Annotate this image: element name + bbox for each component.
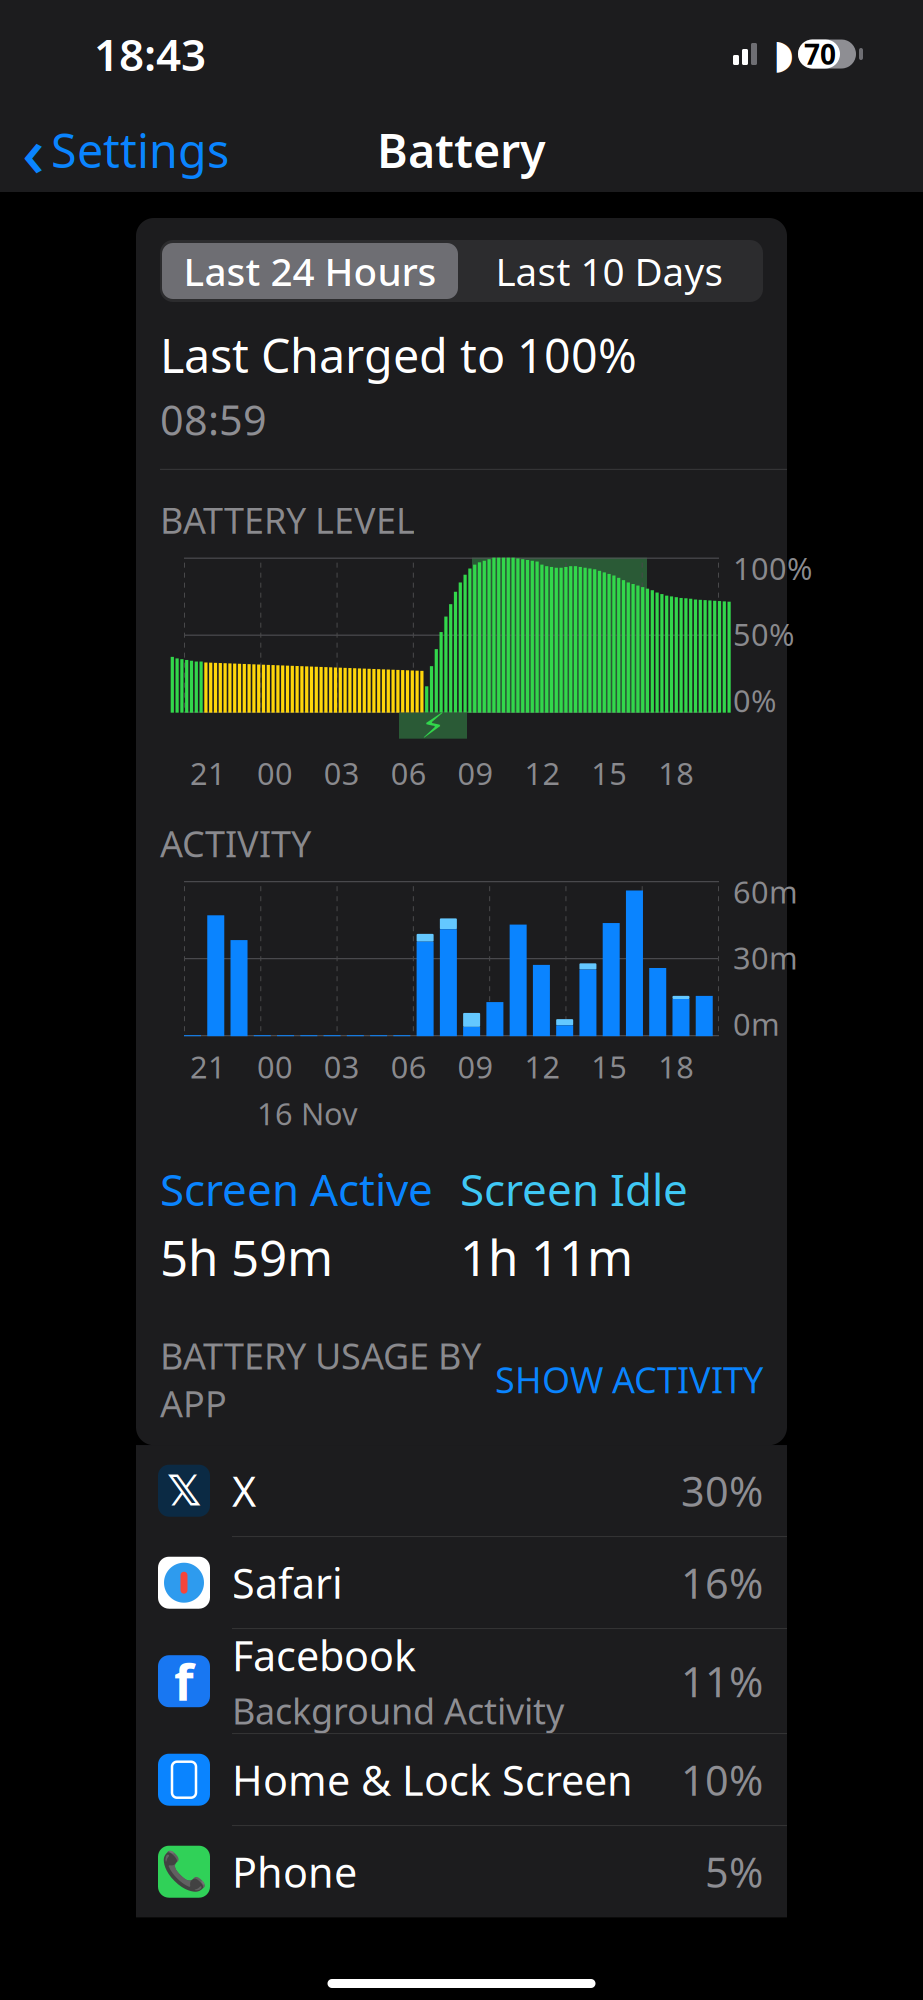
staticText: 18:43	[94, 25, 206, 83]
staticText: 06	[391, 753, 427, 793]
button[interactable]: 𝕏	[136, 1445, 787, 1537]
staticText: ‹	[22, 104, 45, 196]
staticText: 12	[524, 1046, 560, 1087]
staticText: ◗	[773, 31, 794, 77]
staticText: 18	[658, 1046, 694, 1087]
staticText: Facebook	[232, 1628, 416, 1683]
staticText: 50%	[733, 614, 794, 654]
staticText: 09	[457, 753, 493, 793]
button[interactable]: Last 10 Days	[458, 243, 761, 299]
staticText: 15	[591, 1046, 627, 1087]
staticText: ⚡︎	[421, 706, 445, 745]
staticText: Last 10 Days	[495, 245, 723, 297]
staticText: 30m	[733, 937, 798, 978]
staticText: Phone	[232, 1844, 357, 1899]
staticText: 03	[324, 1046, 360, 1087]
button[interactable]: SHOW ACTIVITY	[495, 1355, 763, 1403]
staticText: 5h 59m	[160, 1224, 333, 1290]
staticText: 16%	[681, 1555, 763, 1610]
staticText: SHOW ACTIVITY	[495, 1355, 763, 1403]
staticText: BATTERY LEVEL	[160, 496, 415, 544]
staticText: 21	[190, 1046, 226, 1087]
staticText: 15	[591, 753, 627, 793]
staticText: 📞	[161, 1850, 207, 1893]
staticText: 21	[190, 753, 226, 793]
staticText: Settings	[51, 119, 229, 181]
staticText: 11%	[681, 1654, 763, 1709]
button[interactable]: ‹	[0, 94, 229, 206]
button[interactable]: Home & Lock Screen	[136, 1734, 787, 1826]
staticText: Screen Active	[160, 1160, 433, 1218]
staticText: Safari	[232, 1555, 343, 1610]
staticText: 1h 11m	[460, 1224, 633, 1290]
staticText: 10%	[681, 1752, 763, 1807]
staticText: 03	[324, 753, 360, 793]
button[interactable]: Last 24 Hours	[162, 243, 458, 299]
staticText: 60m	[733, 871, 798, 912]
staticText: 5%	[705, 1844, 763, 1899]
button[interactable]: Safari	[136, 1537, 787, 1629]
staticText: 𝕏	[167, 1466, 201, 1515]
staticText: Screen Idle	[460, 1160, 688, 1218]
staticText: Battery	[377, 119, 546, 181]
staticText: 08:59	[160, 392, 267, 447]
staticText: 18	[658, 753, 694, 793]
staticText: 00	[257, 753, 293, 793]
button[interactable]: 📞	[136, 1826, 787, 1917]
staticText: X	[232, 1463, 256, 1518]
staticText: 100%	[733, 548, 812, 588]
staticText: 0%	[733, 680, 776, 721]
staticText: 30%	[681, 1463, 763, 1518]
staticText: ACTIVITY	[160, 819, 311, 867]
button[interactable]: f	[136, 1629, 787, 1734]
staticText: 0m	[733, 1003, 780, 1044]
staticText: f	[174, 1648, 194, 1715]
staticText: BATTERY USAGE BY APP	[160, 1332, 481, 1427]
staticText: 09	[457, 1046, 493, 1087]
staticText: 16 Nov	[257, 1093, 358, 1134]
staticText: 06	[391, 1046, 427, 1087]
staticText: 12	[524, 753, 560, 793]
staticText: Last 24 Hours	[183, 245, 436, 297]
staticText: 00	[257, 1046, 293, 1087]
staticText: 70	[804, 35, 836, 73]
staticText: Background Activity	[232, 1687, 564, 1734]
staticText: Home & Lock Screen	[232, 1752, 633, 1807]
staticText: Last Charged to 100%	[160, 324, 637, 386]
